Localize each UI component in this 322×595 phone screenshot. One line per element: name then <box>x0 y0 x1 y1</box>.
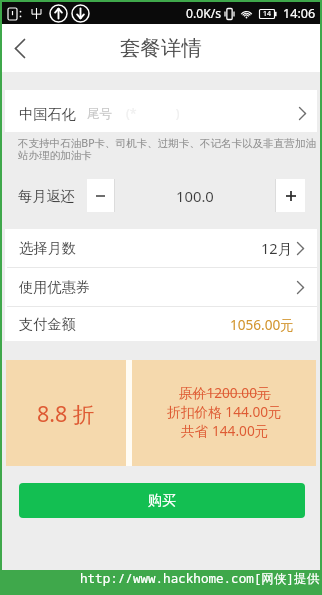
staticText: 选择月数 <box>19 239 76 257</box>
button[interactable]: 使用优惠券 <box>5 268 317 306</box>
staticText: 每月返还 <box>18 187 75 205</box>
staticText: 折扣价格 144.00元 <box>167 402 282 421</box>
staticText: 中国石化 <box>19 105 76 123</box>
button[interactable]: Back <box>2 24 38 72</box>
button[interactable]: 中国石化 <box>5 90 317 132</box>
staticText: 8.8 折 <box>37 399 95 428</box>
button[interactable]: 支付金额 <box>5 307 317 341</box>
staticText: 14 <box>263 9 272 19</box>
staticText: 共省 144.00元 <box>181 421 269 440</box>
staticText: 1056.00元 <box>230 315 294 334</box>
staticText: 0.0K/s <box>186 5 222 22</box>
button[interactable]: Decrease <box>87 179 114 212</box>
button[interactable]: 购买 <box>19 483 305 518</box>
staticText: 14:06 <box>283 5 316 22</box>
staticText: 购买 <box>148 492 176 510</box>
staticText: 12月 <box>261 238 293 258</box>
button[interactable]: Increase <box>276 179 305 212</box>
button[interactable]: 选择月数 <box>5 229 317 267</box>
staticText: 使用优惠券 <box>19 278 90 296</box>
staticText: 套餐详情 <box>120 35 202 61</box>
staticText: 尾号 <box>87 106 112 122</box>
staticText: 100.0 <box>176 186 214 206</box>
staticText: http://www.hackhome.com[网侠]提供 <box>80 570 320 587</box>
staticText: 支付金额 <box>19 315 76 333</box>
staticText: 不支持中石油BP卡、司机卡、过期卡、不记名卡以及非直营加油站办理的加油卡 <box>18 136 320 162</box>
staticText: (* ) <box>126 105 180 122</box>
staticText: 原价1200.00元 <box>179 383 271 402</box>
